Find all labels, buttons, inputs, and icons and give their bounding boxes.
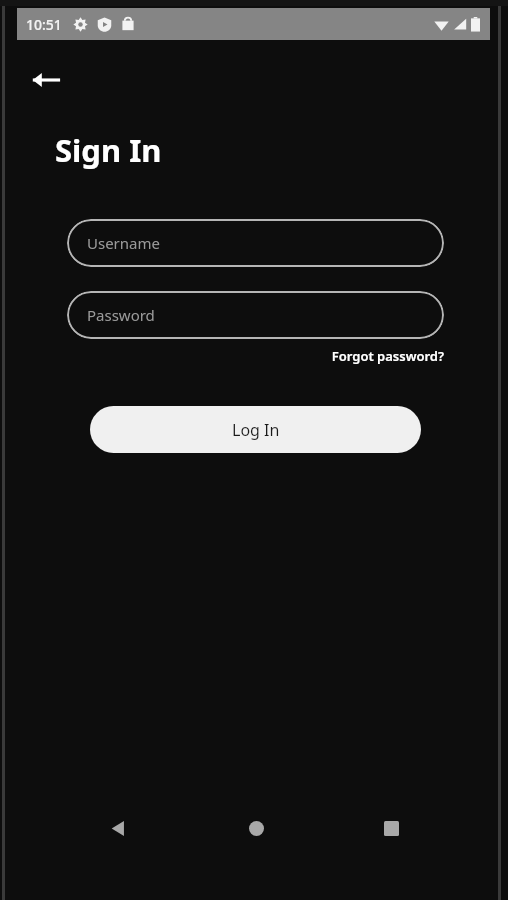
- button[interactable]: Recent apps: [367, 804, 415, 852]
- staticText: Log In: [232, 419, 280, 441]
- staticText: Password: [87, 305, 155, 325]
- staticText: Forgot password?: [331, 347, 444, 365]
- staticText: Username: [87, 233, 160, 253]
- staticText: Sign In: [55, 129, 162, 171]
- button[interactable]: Forgot password?: [300, 344, 444, 368]
- button[interactable]: Back: [94, 804, 142, 852]
- button[interactable]: Password: [67, 291, 444, 339]
- button[interactable]: Home: [232, 804, 280, 852]
- button[interactable]: Log In: [90, 406, 421, 453]
- button[interactable]: Back: [22, 56, 70, 104]
- staticText: 10:51: [26, 15, 62, 34]
- button[interactable]: Username: [67, 219, 444, 267]
